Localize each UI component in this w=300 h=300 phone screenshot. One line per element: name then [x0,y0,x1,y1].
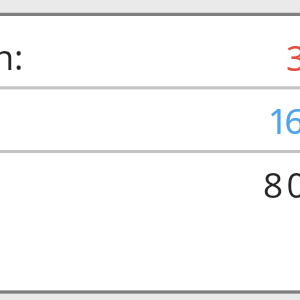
button[interactable]: 16 [0,89,300,150]
staticText: 3 [286,34,300,82]
staticText: 16 [268,97,300,145]
staticText: Duration: [0,33,89,81]
staticText: 80 [263,161,300,209]
button[interactable]: Duration: [0,26,300,86]
button[interactable]: 80 [0,153,300,214]
button[interactable] [0,0,300,16]
